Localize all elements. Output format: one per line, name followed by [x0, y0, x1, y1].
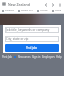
staticText: Help: [56, 55, 62, 59]
button[interactable]: Sign in: [32, 55, 41, 59]
staticText: Sandbox: [5, 9, 14, 12]
button[interactable]: Sandbox: [1, 9, 15, 12]
staticText: Archive: [40, 9, 48, 12]
button[interactable]: Find jobs: [5, 44, 59, 52]
button[interactable]: Archive: [36, 9, 49, 12]
button[interactable]: Help: [56, 55, 62, 59]
button[interactable]: More options: [56, 1, 63, 8]
staticText: Employers: [42, 55, 55, 59]
button[interactable]: Resources: [18, 55, 31, 59]
staticText: Gallery CPT: [21, 9, 33, 12]
staticText: World: [55, 9, 62, 12]
staticText: Resources: [18, 55, 31, 59]
staticText: Job title, keywords or company: [6, 28, 50, 32]
button[interactable]: Job title, keywords or company: [5, 27, 59, 33]
staticText: Post Job: [2, 55, 12, 59]
button[interactable]: Menu: [0, 0, 8, 8]
staticText: New Zealand: [8, 2, 30, 7]
button[interactable]: Back: [42, 1, 49, 8]
button[interactable]: World: [51, 9, 63, 12]
staticText: Find jobs: [26, 46, 38, 50]
button[interactable]: Gallery CPT: [17, 9, 34, 12]
button[interactable]: Post Job: [2, 55, 12, 59]
staticText: Sign in: [32, 55, 41, 59]
button[interactable]: City, state or zip: [5, 36, 59, 42]
button[interactable]: Forward: [49, 1, 56, 8]
button[interactable]: Employers: [42, 55, 55, 59]
staticText: City, state or zip: [6, 37, 29, 41]
